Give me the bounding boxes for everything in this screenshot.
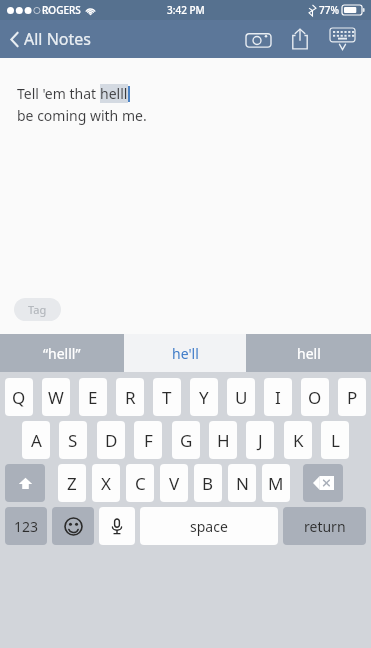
button[interactable]: P <box>338 378 366 416</box>
staticText: “helll” <box>43 344 81 363</box>
staticText: W <box>48 386 64 409</box>
staticText: L <box>331 429 340 452</box>
staticText: R <box>125 386 136 409</box>
staticText: E <box>88 386 98 409</box>
staticText: G <box>180 429 193 452</box>
button[interactable]: Hide keyboard <box>321 20 363 58</box>
staticText: 3:42 PM <box>167 3 205 17</box>
button[interactable]: X <box>92 464 120 502</box>
staticText: U <box>235 386 248 409</box>
button[interactable]: return <box>283 507 366 545</box>
button[interactable]: Share <box>279 20 321 58</box>
button[interactable]: Q <box>5 378 33 416</box>
button[interactable]: Emoji <box>52 507 94 545</box>
button[interactable]: he'll <box>124 334 246 372</box>
staticText: T <box>162 386 172 409</box>
staticText: X <box>101 472 111 495</box>
staticText: A <box>31 429 42 452</box>
staticText: Tell 'em that <box>17 84 100 103</box>
button[interactable]: L <box>321 421 349 459</box>
staticText: be coming with me. <box>17 106 147 125</box>
button[interactable]: Shift <box>5 464 45 502</box>
button[interactable]: hell <box>246 334 371 372</box>
button[interactable]: 123 <box>5 507 47 545</box>
staticText: Z <box>67 472 77 495</box>
staticText: space <box>190 517 228 536</box>
button[interactable]: G <box>172 421 200 459</box>
staticText: I <box>275 386 281 409</box>
button[interactable]: M <box>262 464 290 502</box>
staticText: All Notes <box>24 28 91 50</box>
button[interactable]: Camera <box>237 20 279 58</box>
button[interactable]: W <box>42 378 70 416</box>
staticText: B <box>202 472 214 495</box>
staticText: N <box>236 472 249 495</box>
button[interactable]: “helll” <box>0 334 124 372</box>
button[interactable]: N <box>228 464 256 502</box>
staticText: Q <box>12 386 26 409</box>
button[interactable]: Backspace <box>303 464 343 502</box>
staticText: hell <box>297 344 321 363</box>
button[interactable]: U <box>227 378 255 416</box>
button[interactable]: C <box>126 464 154 502</box>
button[interactable]: Tag <box>14 298 61 321</box>
button[interactable]: O <box>301 378 329 416</box>
staticText: Tag <box>28 302 47 317</box>
staticText: M <box>268 472 284 495</box>
button[interactable]: K <box>284 421 312 459</box>
staticText: 77% <box>319 3 339 17</box>
staticText: F <box>144 429 153 452</box>
button[interactable]: V <box>160 464 188 502</box>
staticText: D <box>105 429 118 452</box>
button[interactable]: F <box>134 421 162 459</box>
button[interactable]: space <box>140 507 278 545</box>
staticText: V <box>169 472 180 495</box>
staticText: Y <box>199 386 209 409</box>
staticText: return <box>304 517 346 536</box>
staticText: H <box>217 429 230 452</box>
button[interactable]: All Notes <box>7 23 94 55</box>
staticText: O <box>308 386 322 409</box>
button[interactable]: R <box>116 378 144 416</box>
staticText: P <box>347 386 358 409</box>
staticText: helll <box>100 84 128 103</box>
staticText: S <box>68 429 78 452</box>
staticText: 123 <box>14 517 39 536</box>
staticText: ROGERS <box>42 3 81 17</box>
button[interactable]: H <box>209 421 237 459</box>
button[interactable]: J <box>246 421 274 459</box>
staticText: he'll <box>172 344 199 363</box>
button[interactable]: S <box>59 421 87 459</box>
button[interactable]: Dictation <box>99 507 135 545</box>
button[interactable]: Y <box>190 378 218 416</box>
staticText: C <box>135 472 146 495</box>
button[interactable]: Z <box>58 464 86 502</box>
button[interactable]: I <box>264 378 292 416</box>
button[interactable]: D <box>97 421 125 459</box>
button[interactable]: T <box>153 378 181 416</box>
staticText: J <box>258 429 263 452</box>
staticText: K <box>293 429 304 452</box>
button[interactable]: A <box>22 421 50 459</box>
button[interactable]: E <box>79 378 107 416</box>
button[interactable]: B <box>194 464 222 502</box>
